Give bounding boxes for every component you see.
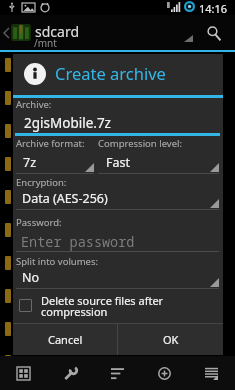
button[interactable]: 7z	[16, 154, 94, 174]
staticText: 7z	[23, 154, 37, 171]
button[interactable]: Enter password	[13, 232, 223, 254]
staticText: Cancel	[48, 332, 83, 347]
button[interactable]: Cancel	[13, 324, 117, 355]
staticText: OK	[163, 332, 179, 347]
button[interactable]: Search	[200, 20, 228, 46]
button[interactable]: 2gisMobile.7z	[13, 112, 223, 134]
button[interactable]: Apps	[0, 356, 47, 390]
button[interactable]: OK	[118, 324, 223, 355]
button[interactable]: Delete source files after compression	[13, 293, 223, 323]
button[interactable]: Fast	[98, 154, 219, 174]
staticText: /mnt	[34, 36, 57, 50]
staticText: No	[22, 269, 40, 286]
staticText: Fast	[106, 154, 131, 171]
staticText: 2gisMobile.7z	[24, 114, 111, 132]
button[interactable]: No	[16, 269, 219, 289]
button[interactable]: Sort	[94, 356, 141, 390]
staticText: Archive:	[16, 98, 52, 111]
staticText: Delete source files after compression	[41, 293, 164, 319]
staticText: Split into volumes:	[16, 255, 99, 268]
button[interactable]: Up	[0, 22, 12, 44]
staticText: Password:	[16, 216, 62, 229]
button[interactable]: Data (AES-256)	[16, 190, 219, 210]
button[interactable]: More	[188, 356, 235, 390]
staticText: Enter password	[21, 233, 135, 251]
button[interactable]: Add	[141, 356, 188, 390]
staticText: sdcard	[35, 22, 80, 41]
staticText: Create archive	[55, 62, 166, 84]
staticText: Archive format:	[16, 137, 85, 150]
staticText: Data (AES-256)	[22, 190, 108, 207]
staticText: 14:16	[199, 1, 228, 16]
staticText: Encryption:	[16, 176, 67, 189]
staticText: Compression level:	[98, 137, 183, 150]
button[interactable]: Tools	[47, 356, 94, 390]
